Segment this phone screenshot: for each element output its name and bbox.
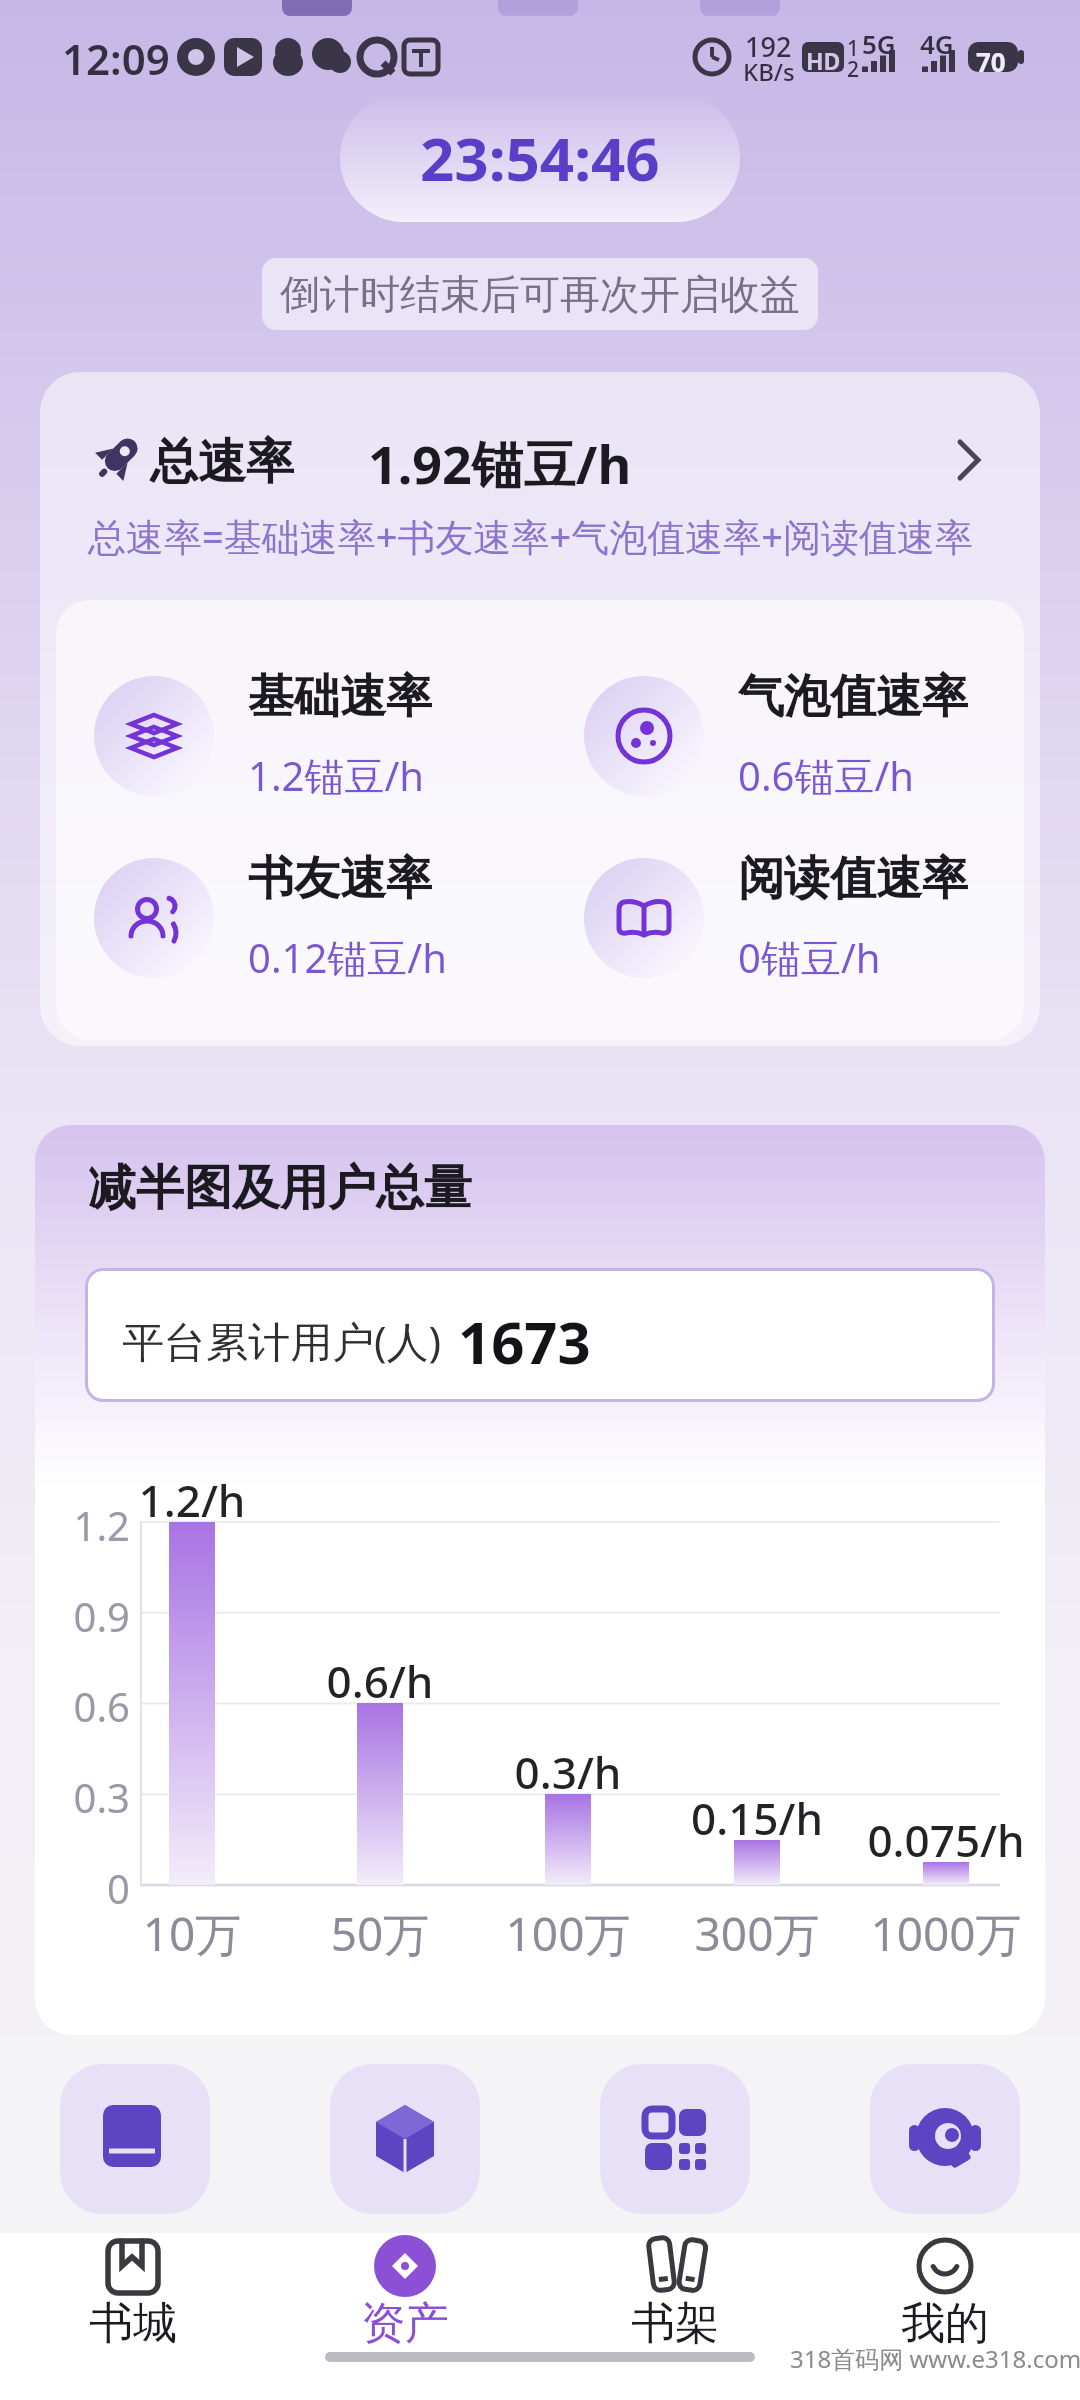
button[interactable]: [330, 2064, 480, 2214]
button[interactable]: [875, 2236, 1015, 2356]
staticText: 书城: [63, 2296, 203, 2351]
staticText: 1.2锚豆/h: [248, 748, 425, 803]
button[interactable]: [605, 2236, 745, 2356]
staticText: 0.075/h: [826, 1810, 1066, 1870]
staticText: HD: [806, 45, 841, 76]
staticText: 气泡值速率: [738, 668, 968, 726]
staticText: 300万: [637, 1902, 877, 1965]
staticText: 0.3/h: [448, 1742, 688, 1802]
staticText: 10万: [72, 1902, 312, 1965]
staticText: 我的: [875, 2296, 1015, 2351]
staticText: 1.2/h: [72, 1470, 312, 1530]
staticText: 70: [976, 44, 1006, 79]
staticText: 倒计时结束后可再次开启收益: [280, 269, 800, 319]
staticText: 318首码网 www.e318.com: [790, 2342, 1080, 2375]
staticText: 4G: [920, 26, 954, 61]
staticText: 书友速率: [248, 850, 432, 908]
staticText: 5G: [862, 26, 896, 61]
staticText: 100万: [448, 1902, 688, 1965]
staticText: 书架: [605, 2296, 745, 2351]
staticText: 1.92锚豆/h: [368, 428, 632, 499]
staticText: 0.6: [30, 1679, 130, 1733]
staticText: 192: [745, 28, 792, 65]
staticText: 0.12锚豆/h: [248, 930, 447, 985]
staticText: 23:54:46: [420, 117, 660, 199]
staticText: 50万: [260, 1902, 500, 1965]
staticText: 2: [847, 55, 860, 84]
button[interactable]: [85, 1268, 995, 1402]
staticText: 资产: [335, 2296, 475, 2351]
staticText: 0: [30, 1861, 130, 1915]
staticText: 1000万: [826, 1902, 1066, 1965]
button[interactable]: [40, 372, 1040, 1046]
staticText: 总速率: [150, 432, 294, 492]
staticText: 0.3: [30, 1770, 130, 1824]
staticText: 1: [847, 34, 860, 63]
button[interactable]: [335, 2236, 475, 2356]
button[interactable]: [600, 2064, 750, 2214]
staticText: 平台累计用户(人): [122, 1312, 442, 1369]
staticText: 0.9: [30, 1589, 130, 1643]
button[interactable]: [870, 2064, 1020, 2214]
button[interactable]: [63, 2236, 203, 2356]
staticText: 0.6锚豆/h: [738, 748, 915, 803]
staticText: 0.15/h: [637, 1788, 877, 1848]
staticText: 减半图及用户总量: [88, 1158, 472, 1218]
staticText: 总速率=基础速率+书友速率+气泡值速率+阅读值速率: [88, 510, 973, 562]
staticText: 1673: [458, 1302, 591, 1381]
staticText: 基础速率: [248, 668, 432, 726]
staticText: 12:09: [62, 30, 170, 87]
staticText: 0.6/h: [260, 1651, 500, 1711]
staticText: 1.2: [30, 1498, 130, 1552]
staticText: KB/s: [743, 55, 795, 88]
staticText: 阅读值速率: [738, 850, 968, 908]
button[interactable]: [60, 2064, 210, 2214]
staticText: 0锚豆/h: [738, 930, 881, 985]
